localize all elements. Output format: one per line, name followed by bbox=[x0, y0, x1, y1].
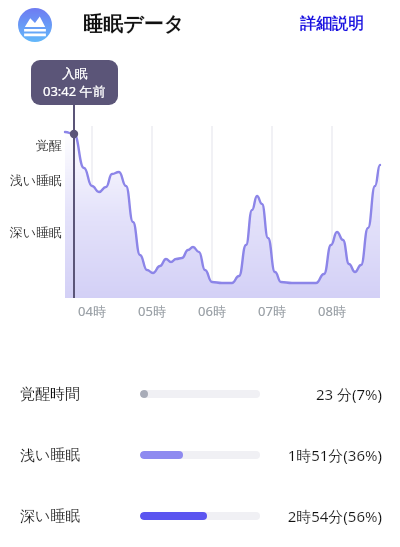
other: Sleep data icon bbox=[18, 8, 52, 42]
button[interactable]: 詳細説明 bbox=[298, 12, 366, 36]
staticText: 05時 bbox=[127, 302, 177, 320]
button[interactable]: 深い睡眠 bbox=[0, 500, 400, 532]
staticText: 08時 bbox=[307, 302, 357, 320]
staticText: 03:42 午前 bbox=[43, 82, 106, 100]
staticText: 深い睡眠 bbox=[20, 507, 140, 526]
staticText: 覚醒 bbox=[0, 137, 62, 153]
staticText: 覚醒時間 bbox=[20, 385, 140, 404]
staticText: 入眠 bbox=[62, 65, 88, 81]
staticText: 深い睡眠 bbox=[0, 224, 62, 240]
button[interactable]: 覚醒時間 bbox=[0, 378, 400, 410]
staticText: 06時 bbox=[187, 302, 237, 320]
staticText: 07時 bbox=[247, 302, 297, 320]
staticText: 2時54分(56%) bbox=[260, 506, 382, 526]
button[interactable]: 浅い睡眠 bbox=[0, 439, 400, 471]
staticText: 23 分(7%) bbox=[260, 384, 382, 404]
staticText: 詳細説明 bbox=[300, 14, 364, 34]
staticText: 浅い睡眠 bbox=[0, 172, 62, 188]
staticText: 1時51分(36%) bbox=[260, 445, 382, 465]
staticText: 睡眠データ bbox=[83, 12, 184, 37]
button[interactable]: 入眠 bbox=[31, 60, 118, 105]
staticText: 04時 bbox=[67, 302, 117, 320]
staticText: 浅い睡眠 bbox=[20, 446, 140, 465]
